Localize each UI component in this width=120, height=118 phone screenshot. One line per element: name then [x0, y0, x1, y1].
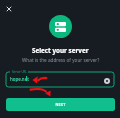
button[interactable]: Clear text	[104, 78, 110, 84]
staticText: NEXT	[55, 102, 66, 107]
staticText: What is the address of your server?	[22, 57, 100, 63]
staticText: hope.net	[10, 76, 29, 82]
staticText: Server URL	[12, 70, 27, 74]
button[interactable]: Close	[2, 2, 16, 16]
staticText: Select your server	[32, 46, 89, 55]
button[interactable]: NEXT	[6, 98, 115, 111]
